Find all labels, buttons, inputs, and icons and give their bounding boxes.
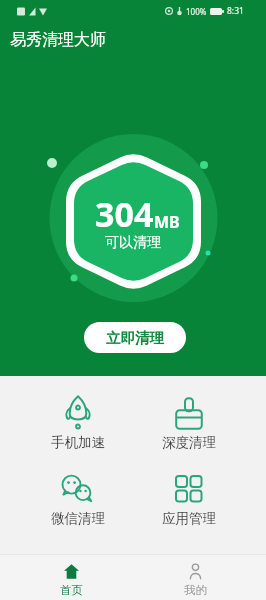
- staticText: 首页: [60, 583, 83, 597]
- staticText: 100%: [186, 6, 207, 17]
- staticText: 应用管理: [162, 510, 216, 527]
- staticText: 微信清理: [51, 510, 105, 527]
- staticText: 立即清理: [106, 329, 164, 347]
- button[interactable]: 深度清理: [133, 397, 244, 451]
- staticText: 可以清理: [0, 234, 266, 252]
- staticText: 我的: [184, 583, 207, 597]
- staticText: MB: [154, 211, 180, 233]
- button[interactable]: 应用管理: [133, 475, 244, 527]
- staticText: 8:31: [227, 5, 244, 17]
- other: 我的: [188, 564, 203, 579]
- button[interactable]: 微信清理: [22, 475, 133, 527]
- staticText: 易秀清理大师: [10, 30, 106, 50]
- button[interactable]: 立即清理: [84, 322, 186, 353]
- staticText: 304: [95, 191, 154, 237]
- staticText: 深度清理: [162, 434, 216, 451]
- button[interactable]: 我的: [133, 555, 257, 600]
- staticText: 手机加速: [51, 434, 105, 451]
- button[interactable]: 首页: [9, 555, 133, 600]
- button[interactable]: 手机加速: [22, 395, 133, 451]
- other: 首页: [64, 564, 79, 579]
